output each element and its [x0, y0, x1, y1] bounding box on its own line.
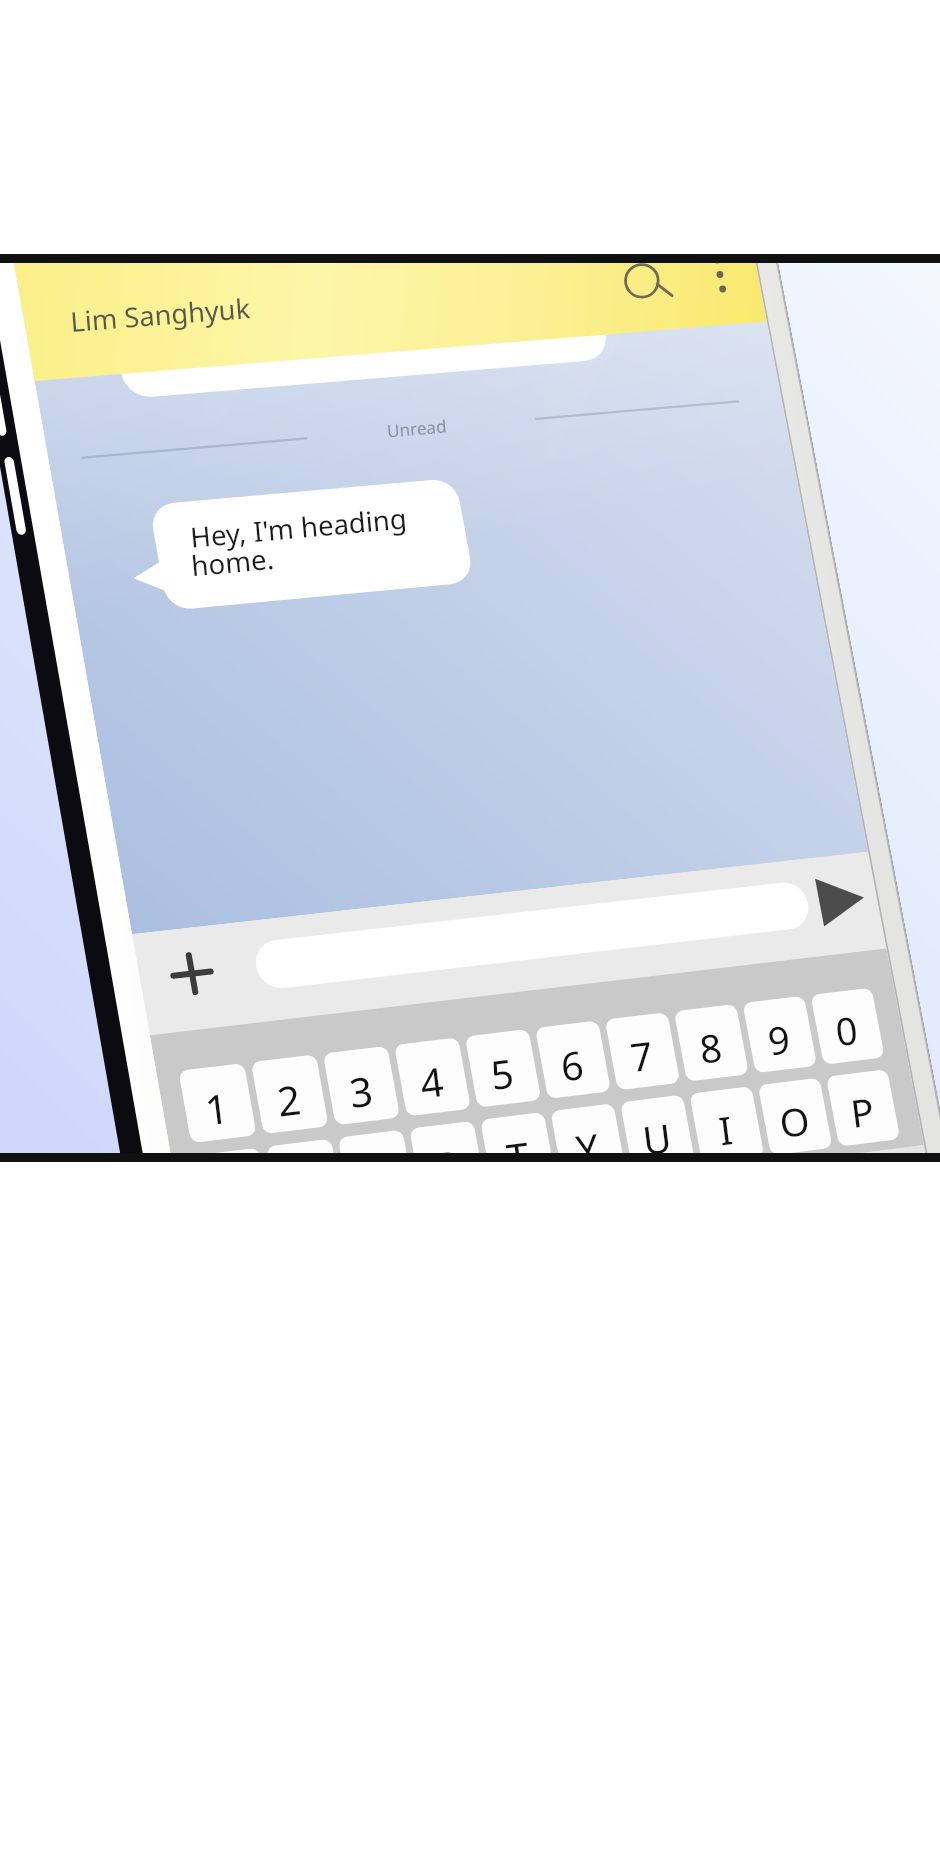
button[interactable]: Chat with Lim Sanghyuk	[0, 0, 940, 1865]
